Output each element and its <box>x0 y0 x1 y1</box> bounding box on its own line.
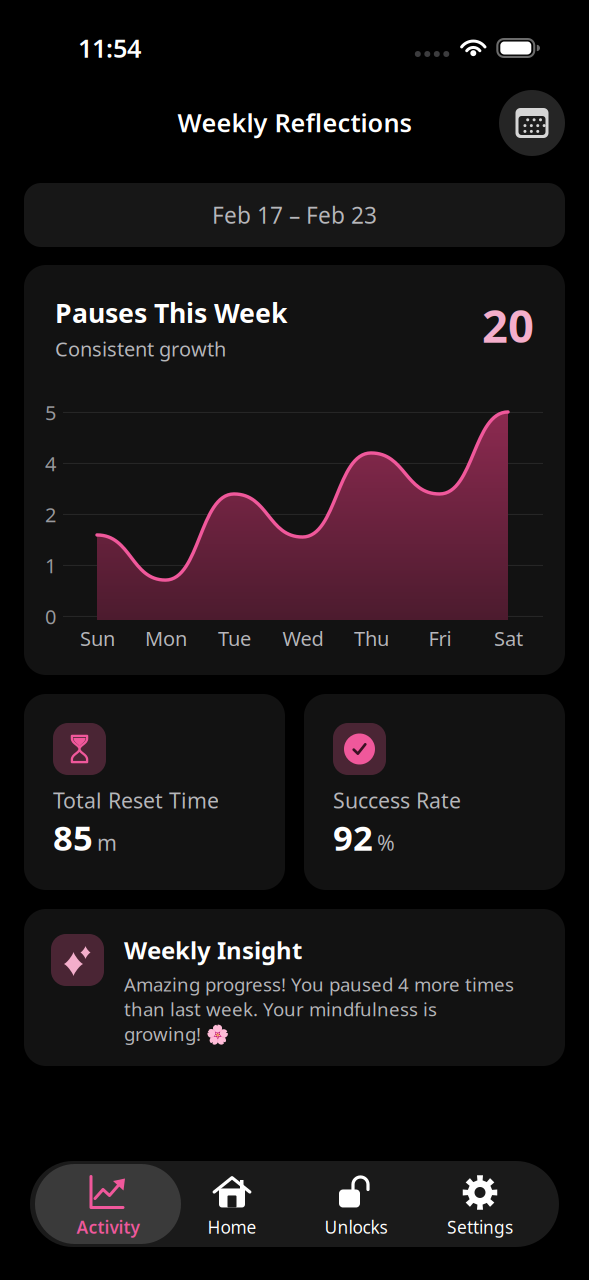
staticText: 5 <box>45 399 56 426</box>
staticText: 2 <box>45 501 56 528</box>
button[interactable]: Home <box>170 1164 294 1244</box>
staticText: Consistent growth <box>55 335 226 362</box>
button[interactable]: Calendar <box>499 90 565 167</box>
staticText: Total Reset Time <box>53 786 219 814</box>
staticText: Mon <box>145 625 187 652</box>
staticText: Unlocks <box>324 1215 387 1238</box>
staticText: % <box>377 828 395 857</box>
staticText: Home <box>207 1215 256 1238</box>
staticText: Amazing progress! You paused 4 more time… <box>124 972 514 1046</box>
staticText: Pauses This Week <box>55 295 288 330</box>
staticText: 85 <box>53 814 93 860</box>
staticText: Wed <box>282 625 323 652</box>
staticText: 4 <box>45 450 56 477</box>
staticText: m <box>97 828 117 857</box>
staticText: Feb 17 – Feb 23 <box>212 200 377 230</box>
staticText: Weekly Insight <box>124 934 302 966</box>
staticText: Tue <box>218 625 251 652</box>
staticText: Fri <box>428 625 451 652</box>
staticText: 11:54 <box>78 31 141 65</box>
button[interactable]: Activity <box>46 1164 170 1244</box>
staticText: Settings <box>447 1215 513 1238</box>
staticText: 0 <box>45 603 56 630</box>
button[interactable]: Feb 17 – Feb 23 <box>24 183 565 247</box>
staticText: 1 <box>45 552 56 579</box>
staticText: Activity <box>76 1215 139 1238</box>
staticText: 92 <box>333 814 373 860</box>
staticText: Success Rate <box>333 786 461 814</box>
staticText: Sat <box>494 625 523 652</box>
button[interactable]: Unlocks <box>294 1164 418 1244</box>
staticText: Sun <box>80 625 115 652</box>
staticText: Thu <box>354 625 389 652</box>
button[interactable]: Settings <box>418 1164 542 1244</box>
staticText: Weekly Reflections <box>177 106 411 139</box>
staticText: 20 <box>482 295 534 355</box>
